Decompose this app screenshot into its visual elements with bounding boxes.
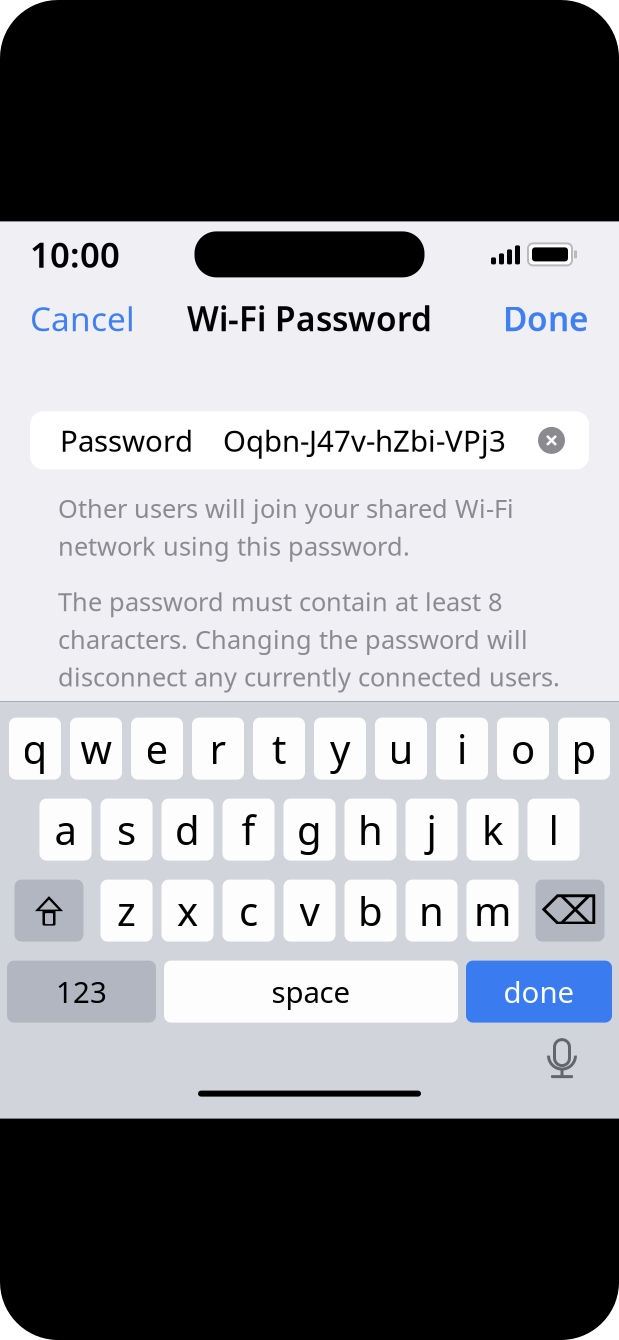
staticText: 123 [56, 972, 107, 1011]
button[interactable]: 123 [7, 961, 156, 1023]
staticText: h [358, 803, 383, 856]
staticText: s [117, 803, 136, 856]
staticText: Cancel [30, 296, 135, 341]
staticText: z [117, 884, 136, 937]
button[interactable]: x [161, 880, 213, 942]
button[interactable]: g [283, 799, 335, 861]
button[interactable]: e [131, 718, 183, 780]
button[interactable]: t [253, 718, 305, 780]
staticText: k [482, 803, 503, 856]
button[interactable]: f [222, 799, 274, 861]
button[interactable]: Cancel [24, 288, 141, 349]
button[interactable]: b [344, 880, 396, 942]
staticText: o [511, 722, 535, 775]
button[interactable]: l [527, 799, 579, 861]
button[interactable]: k [466, 799, 518, 861]
staticText: Oqbn-J47v-hZbi-VPj3 [223, 421, 506, 460]
button[interactable]: u [375, 718, 427, 780]
button[interactable]: done [466, 961, 612, 1023]
staticText: i [457, 722, 467, 775]
button[interactable]: Dictate [537, 1031, 587, 1087]
staticText: r [209, 722, 226, 775]
button[interactable]: w [70, 718, 122, 780]
staticText: f [241, 803, 255, 856]
button[interactable]: o [497, 718, 549, 780]
staticText: m [474, 884, 511, 937]
button[interactable]: h [344, 799, 396, 861]
staticText: done [503, 972, 574, 1011]
staticText: t [272, 722, 286, 775]
button[interactable]: q [9, 718, 61, 780]
staticText: y [330, 722, 350, 775]
staticText: Done [503, 296, 589, 341]
button[interactable]: n [405, 880, 457, 942]
staticText: Other users will join your shared Wi-Fi … [58, 491, 514, 563]
button[interactable]: p [558, 718, 610, 780]
staticText: a [54, 803, 76, 856]
staticText: e [145, 722, 168, 775]
staticText: n [419, 884, 444, 937]
staticText: Password [60, 421, 193, 460]
staticText: 10:00 [30, 231, 120, 277]
staticText: u [388, 722, 413, 775]
button[interactable]: Delete [535, 880, 604, 942]
staticText: d [175, 803, 200, 856]
staticText: p [571, 722, 596, 775]
button[interactable]: s [100, 799, 152, 861]
button[interactable]: Shift [14, 880, 83, 942]
button[interactable]: space [164, 961, 458, 1023]
button[interactable]: Done [497, 288, 595, 349]
button[interactable]: v [283, 880, 335, 942]
staticText: c [239, 884, 258, 937]
staticText: g [297, 803, 322, 856]
staticText: x [177, 884, 198, 937]
button[interactable]: m [466, 880, 518, 942]
button[interactable]: r [192, 718, 244, 780]
button[interactable]: i [436, 718, 488, 780]
staticText: l [548, 803, 558, 856]
staticText: ⌫ [541, 888, 598, 933]
button[interactable]: z [100, 880, 152, 942]
button[interactable]: d [161, 799, 213, 861]
staticText: w [80, 722, 111, 775]
staticText: v [299, 884, 319, 937]
button[interactable]: a [39, 799, 91, 861]
staticText: space [271, 972, 350, 1011]
button[interactable]: j [405, 799, 457, 861]
button[interactable]: c [222, 880, 274, 942]
staticText: q [22, 722, 47, 775]
button[interactable]: y [314, 718, 366, 780]
staticText: j [426, 803, 436, 856]
button[interactable]: Clear text [538, 427, 589, 454]
staticText: b [358, 884, 383, 937]
staticText: Wi-Fi Password [187, 296, 432, 341]
staticText: The password must contain at least 8 cha… [58, 585, 560, 694]
